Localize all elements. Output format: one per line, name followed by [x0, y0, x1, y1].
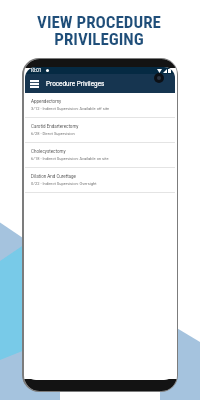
staticText: Carotid Endarterectomy [31, 124, 79, 129]
staticText: Dilation And Curettage [31, 174, 76, 179]
button[interactable]: Dilation And Curettage [25, 168, 175, 193]
staticText: PRIVILEGING [54, 29, 144, 49]
button[interactable]: Appendectomy [25, 93, 175, 118]
staticText: 3/12 - Indirect Supervision: Available o… [31, 106, 110, 111]
staticText: 0/22 - Indirect Supervision: Oversight [31, 181, 97, 186]
staticText: Cholecystectomy [31, 149, 66, 154]
staticText: Procedure Privileges [46, 80, 105, 88]
button[interactable]: Cholecystectomy [25, 143, 175, 168]
button[interactable]: Carotid Endarterectomy [25, 118, 175, 143]
staticText: 6/18 - Indirect Supervision: Available o… [31, 156, 109, 161]
staticText: VIEW PROCEDURE [37, 12, 161, 32]
staticText: Appendectomy [31, 99, 62, 104]
staticText: 6/28 - Direct Supervision [31, 131, 75, 136]
staticText: 10:01 [30, 68, 42, 73]
button[interactable]: Open navigation drawer [30, 80, 39, 88]
